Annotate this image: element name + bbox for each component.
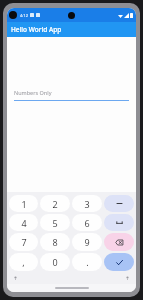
button[interactable]: Space [104, 214, 134, 231]
staticText: 1 [21, 198, 27, 210]
button[interactable]: Enter [104, 253, 134, 271]
button[interactable]: 6 [72, 214, 102, 231]
button[interactable]: 7 [9, 233, 38, 251]
staticText: 3 [84, 198, 90, 210]
staticText: . [86, 256, 89, 268]
button[interactable]: 9 [72, 233, 102, 251]
staticText: Numbers Only [14, 89, 52, 96]
button[interactable]: . [72, 253, 102, 271]
button[interactable]: Home [55, 287, 89, 289]
button[interactable]: Numbers Only [14, 89, 129, 101]
staticText: 4 [21, 217, 27, 229]
button[interactable]: 1 [9, 195, 38, 212]
button[interactable]: 8 [40, 233, 70, 251]
button[interactable]: 3 [72, 195, 102, 212]
button[interactable]: Dash [104, 195, 134, 212]
button[interactable]: Hello World App [7, 22, 136, 37]
button[interactable]: , [9, 253, 38, 271]
button[interactable]: 5 [40, 214, 70, 231]
button[interactable]: Keyboard settings [12, 274, 19, 281]
staticText: 5 [52, 217, 58, 229]
button[interactable]: 4 [9, 214, 38, 231]
staticText: 6 [84, 217, 90, 229]
staticText: 8 [52, 236, 58, 248]
button[interactable]: Backspace [104, 233, 134, 251]
button[interactable]: 0 [40, 253, 70, 271]
staticText: 9 [84, 236, 90, 248]
staticText: 2 [52, 198, 58, 210]
button[interactable]: Hide keyboard [124, 274, 131, 281]
staticText: Hello World App [11, 25, 62, 34]
button[interactable]: 2 [40, 195, 70, 212]
staticText: 0 [52, 256, 58, 268]
staticText: 7 [21, 236, 27, 248]
staticText: , [22, 256, 25, 268]
staticText: 4:12 [20, 13, 28, 18]
